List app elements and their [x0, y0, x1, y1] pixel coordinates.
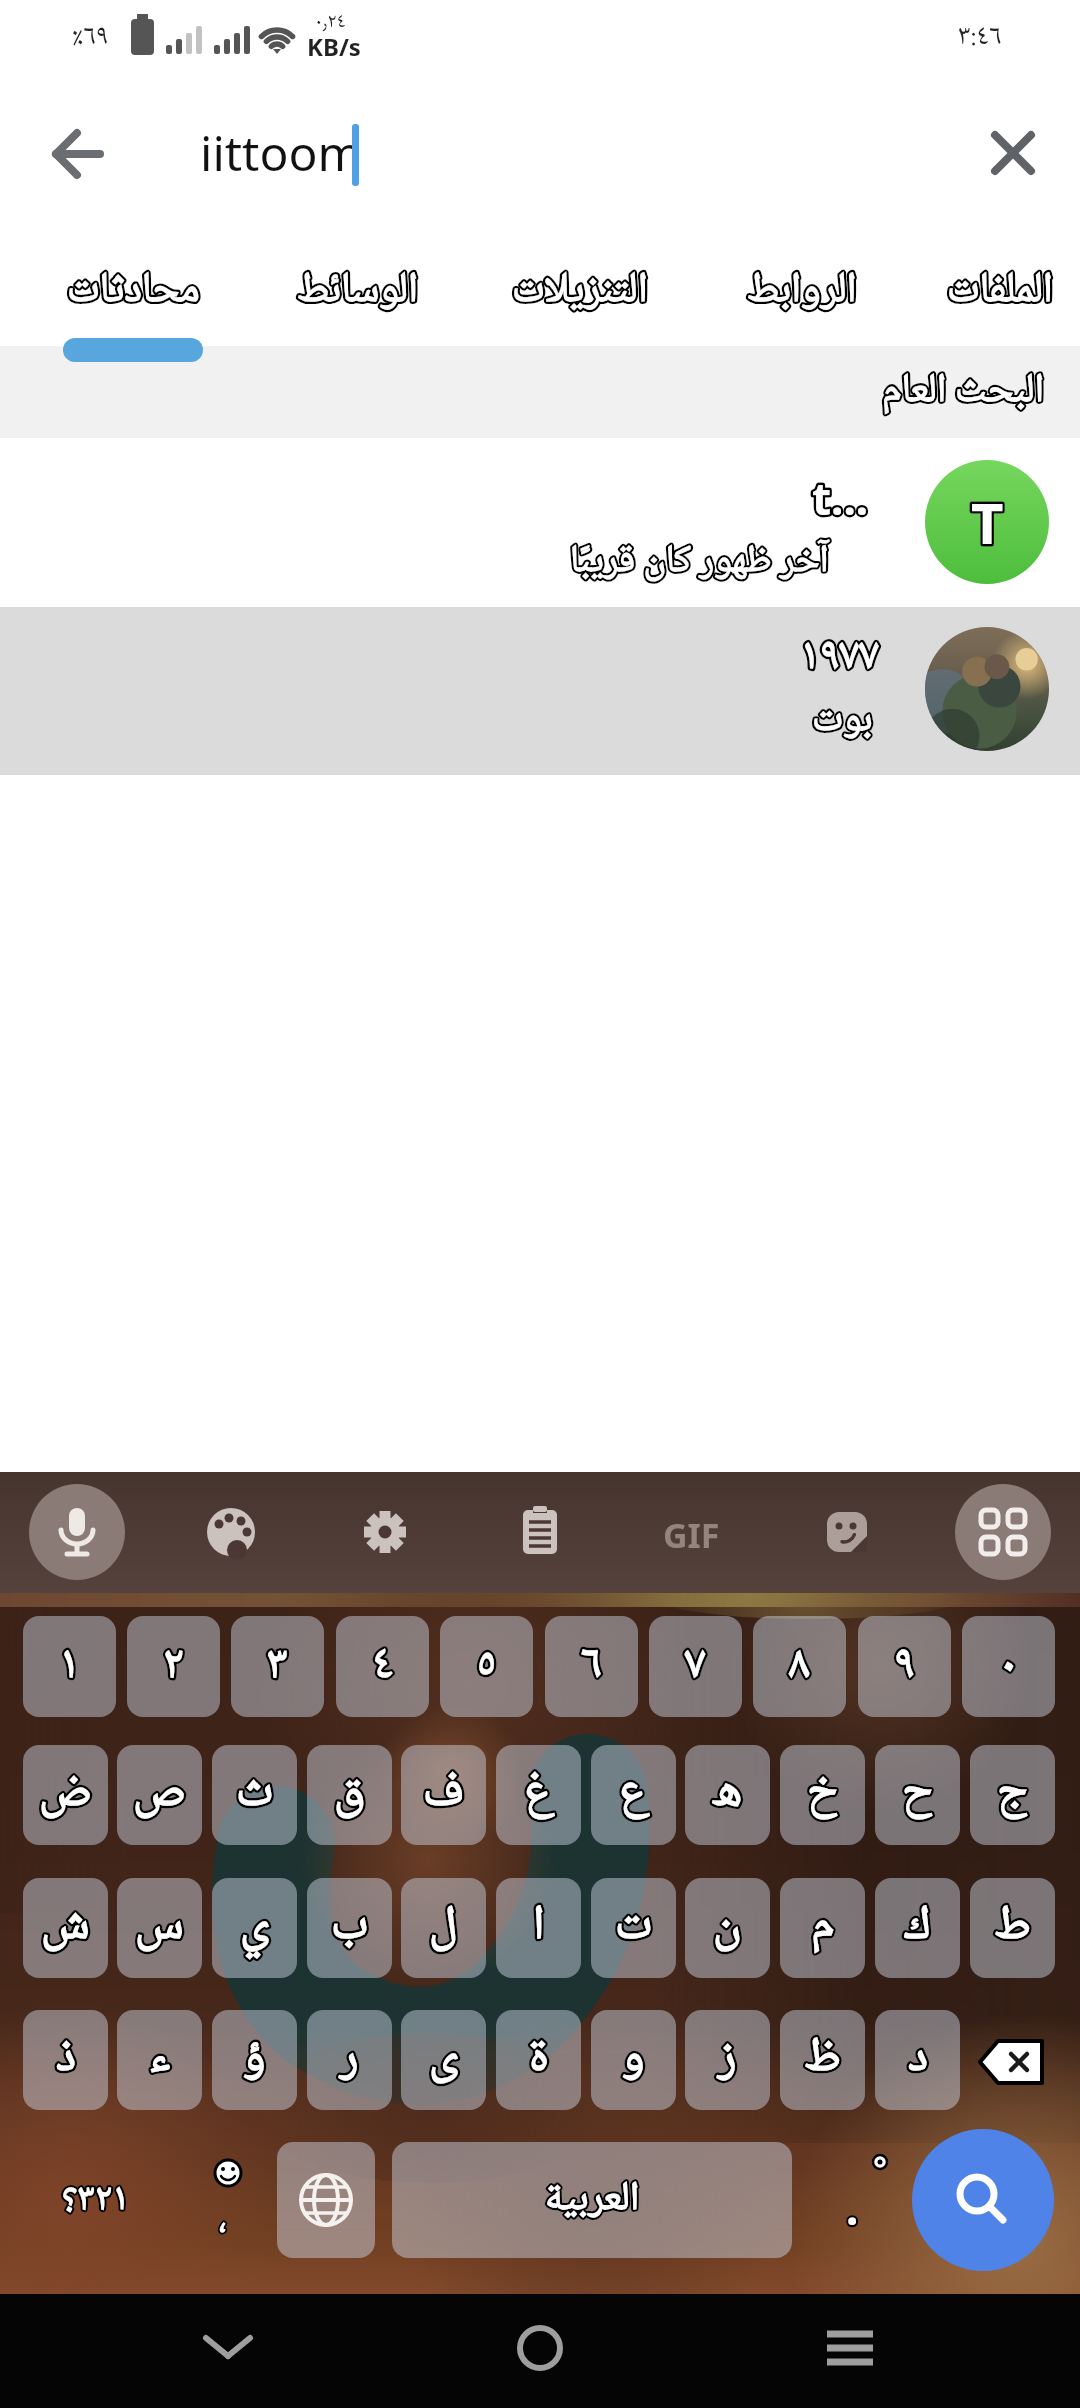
button[interactable]: ة — [496, 2010, 581, 2110]
staticText: T — [971, 484, 1004, 560]
button[interactable]: ٣٢١؟ — [30, 2142, 160, 2258]
button[interactable]: ظ — [780, 2010, 865, 2110]
staticText: ١ — [59, 1628, 80, 1706]
staticText: ، — [219, 2194, 227, 2252]
staticText: الوسائط — [297, 256, 418, 328]
button[interactable]: ٧ — [649, 1616, 742, 1717]
button[interactable]: ذ — [23, 2010, 108, 2110]
button[interactable] — [29, 1484, 125, 1580]
button[interactable]: ى — [401, 2010, 486, 2110]
button[interactable]: T — [0, 438, 1080, 607]
button[interactable] — [40, 119, 110, 189]
button[interactable]: ٣ — [231, 1616, 324, 1717]
button[interactable]: س — [117, 1878, 202, 1978]
staticText: ب — [331, 1887, 369, 1969]
button[interactable]: ث — [212, 1745, 297, 1845]
staticText: ن — [713, 1887, 742, 1969]
button[interactable]: ١٩٧٧ — [0, 607, 1080, 775]
staticText: ث — [236, 1754, 274, 1836]
button[interactable]: ر — [307, 2010, 392, 2110]
button[interactable]: ا — [496, 1878, 581, 1978]
staticText: ٥ — [476, 1628, 497, 1706]
button[interactable]: خ — [780, 1745, 865, 1845]
staticText: ة — [529, 2019, 549, 2101]
button[interactable] — [361, 1508, 409, 1556]
button[interactable]: ح — [875, 1745, 960, 1845]
button[interactable]: ش — [23, 1878, 108, 1978]
button[interactable]: ب — [307, 1878, 392, 1978]
button[interactable] — [983, 123, 1043, 183]
button[interactable]: العربية — [392, 2142, 792, 2258]
button[interactable]: و — [591, 2010, 676, 2110]
button[interactable]: ض — [23, 1745, 108, 1845]
button[interactable]: ع — [591, 1745, 676, 1845]
button[interactable] — [823, 1508, 871, 1556]
staticText: ز — [718, 2019, 737, 2101]
button[interactable]: الملفات — [930, 250, 1070, 334]
staticText: ظ — [804, 2019, 841, 2101]
staticText: ا — [533, 1887, 545, 1969]
button[interactable]: ٨ — [753, 1616, 846, 1717]
button[interactable] — [203, 2330, 253, 2364]
button[interactable]: ك — [875, 1878, 960, 1978]
button[interactable] — [978, 2036, 1048, 2088]
button[interactable]: الروابط — [732, 250, 872, 334]
button[interactable]: ص — [117, 1745, 202, 1845]
button[interactable]: محادثات — [63, 250, 203, 334]
staticText: ت — [615, 1887, 653, 1969]
staticText: ف — [423, 1754, 464, 1836]
staticText: د — [908, 2019, 928, 2101]
button[interactable] — [825, 2330, 875, 2366]
staticText: ب — [331, 1887, 369, 1969]
button[interactable]: ء — [117, 2010, 202, 2110]
button[interactable]: ق — [307, 1745, 392, 1845]
button[interactable] — [207, 1508, 255, 1556]
button[interactable]: ن — [685, 1878, 770, 1978]
button[interactable]: ٠ — [962, 1616, 1055, 1717]
staticText: ص — [133, 1754, 186, 1836]
staticText: ذ — [56, 2019, 76, 2101]
button[interactable]: ل — [401, 1878, 486, 1978]
staticText: ٧ — [685, 1628, 706, 1706]
staticText: ك — [904, 1887, 931, 1969]
button[interactable] — [516, 2324, 564, 2372]
button[interactable]: ه — [685, 1745, 770, 1845]
staticText: ي — [240, 1887, 270, 1969]
button[interactable]: ٢ — [127, 1616, 220, 1717]
button[interactable]: م — [780, 1878, 865, 1978]
button[interactable] — [517, 1506, 565, 1554]
button[interactable]: ٦ — [545, 1616, 638, 1717]
staticText: T — [971, 484, 1004, 560]
button[interactable]: . — [810, 2142, 895, 2258]
button[interactable]: GIF — [663, 1512, 720, 1558]
button[interactable]: ١ — [23, 1616, 116, 1717]
staticText: ٦ — [581, 1628, 602, 1706]
staticText: ٠٫٢٤ — [314, 6, 346, 40]
button[interactable]: ز — [685, 2010, 770, 2110]
button[interactable]: التنزيلات — [500, 250, 660, 334]
staticText: iittoom — [200, 120, 363, 185]
button[interactable]: ي — [212, 1878, 297, 1978]
button[interactable] — [277, 2142, 375, 2258]
button[interactable]: الوسائط — [287, 250, 427, 334]
button[interactable]: ٥ — [440, 1616, 533, 1717]
staticText: ظ — [804, 2019, 841, 2101]
button[interactable]: ٩ — [858, 1616, 951, 1717]
button[interactable]: ت — [591, 1878, 676, 1978]
staticText: غ — [524, 1754, 553, 1836]
button[interactable]: ؤ — [212, 2010, 297, 2110]
staticText: ل — [429, 1887, 458, 1969]
button[interactable]: ج — [970, 1745, 1055, 1845]
staticText: ر — [340, 2019, 359, 2101]
button[interactable]: ط — [970, 1878, 1055, 1978]
staticText: ١ — [59, 1628, 80, 1706]
button[interactable] — [955, 1484, 1051, 1580]
staticText: ة — [529, 2019, 549, 2101]
button[interactable] — [912, 2129, 1054, 2271]
button[interactable]: ف — [401, 1745, 486, 1845]
staticText: ٨ — [789, 1628, 810, 1706]
button[interactable]: ٤ — [336, 1616, 429, 1717]
button[interactable]: ، — [185, 2142, 270, 2258]
button[interactable]: د — [875, 2010, 960, 2110]
button[interactable]: غ — [496, 1745, 581, 1845]
